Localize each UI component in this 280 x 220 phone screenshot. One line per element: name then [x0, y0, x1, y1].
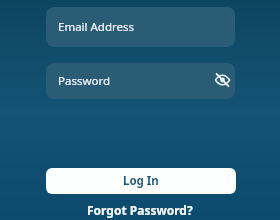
button[interactable]: Email Address	[46, 7, 235, 47]
button[interactable]: Password	[46, 63, 235, 99]
button[interactable]: Log In	[46, 168, 236, 194]
staticText: Email Address	[58, 19, 135, 35]
staticText: Password	[58, 73, 111, 89]
staticText: Log In	[123, 173, 159, 189]
staticText: Forgot Password?	[87, 202, 193, 218]
button[interactable]: Forgot Password?	[0, 202, 280, 218]
